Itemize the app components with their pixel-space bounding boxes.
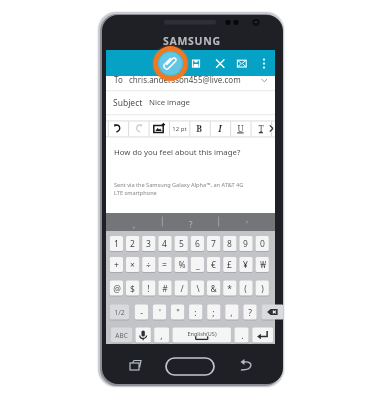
staticText: . bbox=[241, 330, 244, 342]
staticText: , bbox=[230, 307, 233, 319]
button[interactable]: £ bbox=[223, 257, 236, 272]
staticText: £ bbox=[227, 259, 232, 271]
button[interactable]: 1 bbox=[110, 236, 123, 251]
button[interactable]: " bbox=[171, 305, 184, 320]
staticText: I bbox=[218, 123, 222, 135]
button[interactable]: € bbox=[207, 257, 220, 272]
button[interactable]: , bbox=[225, 305, 238, 320]
staticText: ) bbox=[261, 283, 264, 295]
button[interactable]: 12 pt bbox=[169, 121, 189, 137]
staticText: Sent via the Samsung Galaxy Alpha™, an A… bbox=[114, 181, 244, 196]
button[interactable]: - bbox=[135, 305, 148, 320]
staticText: 9 bbox=[243, 238, 248, 250]
button[interactable]: , bbox=[154, 328, 169, 343]
button[interactable]: & bbox=[207, 281, 220, 296]
button[interactable]: How do you feel about this image? bbox=[114, 147, 241, 158]
staticText: \ bbox=[196, 283, 200, 295]
button[interactable]: 3 bbox=[142, 236, 155, 251]
staticText: * bbox=[227, 283, 232, 295]
staticText: 5 bbox=[179, 238, 184, 250]
staticText: 12 pt bbox=[172, 125, 187, 133]
button[interactable]: ) bbox=[256, 281, 269, 296]
button[interactable]: . bbox=[235, 328, 249, 343]
staticText: , bbox=[160, 330, 163, 342]
staticText: 1 bbox=[114, 238, 119, 250]
button[interactable]: 2 bbox=[126, 236, 139, 251]
button[interactable]: T bbox=[251, 121, 271, 137]
staticText: 6 bbox=[195, 238, 200, 250]
staticText: × bbox=[130, 259, 135, 271]
button[interactable] bbox=[136, 328, 151, 343]
button[interactable]: ? bbox=[243, 305, 256, 320]
button[interactable]: 4 bbox=[158, 236, 171, 251]
button[interactable]: English(US) bbox=[173, 328, 231, 343]
button[interactable]: # bbox=[158, 281, 171, 296]
button[interactable]: To bbox=[106, 70, 275, 89]
staticText: 3 bbox=[146, 238, 151, 250]
button[interactable]: ; bbox=[207, 305, 220, 320]
staticText: € bbox=[211, 259, 216, 271]
button[interactable]: ÷ bbox=[142, 257, 155, 272]
button[interactable]: 6 bbox=[191, 236, 204, 251]
button[interactable]: $ bbox=[126, 281, 139, 296]
button[interactable]: + bbox=[110, 257, 123, 272]
button[interactable] bbox=[252, 328, 273, 343]
staticText: , bbox=[133, 219, 136, 230]
button[interactable]: ' bbox=[153, 305, 166, 320]
button[interactable]: ! bbox=[142, 281, 155, 296]
staticText: SAMSUNG bbox=[163, 34, 221, 48]
staticText: chris.andersson455@live.com bbox=[129, 74, 241, 85]
staticText: / bbox=[180, 283, 184, 295]
staticText: + bbox=[114, 259, 119, 271]
button[interactable]: 5 bbox=[175, 236, 188, 251]
button[interactable]: U bbox=[230, 121, 250, 137]
staticText: ¥ bbox=[243, 259, 248, 271]
button[interactable]: I bbox=[210, 121, 230, 137]
staticText: English(US) bbox=[187, 330, 217, 337]
staticText: - bbox=[140, 307, 143, 319]
button[interactable]: : bbox=[189, 305, 202, 320]
staticText: : bbox=[194, 307, 197, 319]
staticText: ? bbox=[248, 307, 252, 319]
button[interactable]: × bbox=[126, 257, 139, 272]
staticText: ' bbox=[159, 307, 161, 319]
staticText: % bbox=[178, 259, 186, 271]
staticText: ; bbox=[212, 307, 215, 319]
staticText: 4 bbox=[162, 238, 167, 250]
staticText: 0 bbox=[260, 238, 265, 250]
button[interactable]: @ bbox=[110, 281, 123, 296]
button[interactable]: Subject bbox=[106, 91, 275, 114]
button[interactable]: 9 bbox=[239, 236, 252, 251]
button[interactable]: ¥ bbox=[239, 257, 252, 272]
button[interactable]: 7 bbox=[207, 236, 220, 251]
button[interactable]: 1/2 bbox=[110, 305, 129, 320]
button[interactable]: 0 bbox=[256, 236, 269, 251]
button[interactable]: ABC bbox=[111, 328, 132, 343]
button[interactable]: * bbox=[223, 281, 236, 296]
staticText: ! bbox=[147, 283, 150, 295]
button[interactable]: B bbox=[189, 121, 209, 137]
button[interactable]: % bbox=[175, 257, 188, 272]
staticText: ? bbox=[189, 219, 193, 230]
button[interactable]: = bbox=[158, 257, 171, 272]
staticText: Nice image bbox=[149, 97, 190, 108]
staticText: ABC bbox=[115, 331, 128, 340]
staticText: ₩ bbox=[260, 259, 266, 271]
button[interactable]: \ bbox=[191, 281, 204, 296]
staticText: @ bbox=[113, 283, 121, 295]
button[interactable]: _ bbox=[191, 257, 204, 272]
staticText: & bbox=[210, 283, 217, 295]
button[interactable]: , bbox=[106, 213, 163, 231]
staticText: Subject bbox=[113, 97, 143, 109]
staticText: U bbox=[237, 123, 244, 135]
button[interactable]: ? bbox=[163, 213, 219, 231]
button[interactable] bbox=[262, 305, 284, 320]
button[interactable]: / bbox=[175, 281, 188, 296]
staticText: $ bbox=[130, 283, 135, 295]
button[interactable]: ( bbox=[239, 281, 252, 296]
staticText: To bbox=[114, 74, 123, 85]
staticText: B bbox=[196, 123, 202, 135]
button[interactable]: ₩ bbox=[256, 257, 269, 272]
button[interactable]: 8 bbox=[223, 236, 236, 251]
